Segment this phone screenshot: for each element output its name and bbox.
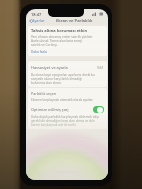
staticText: 18:47 bbox=[31, 12, 42, 17]
staticText: %61 bbox=[97, 65, 104, 70]
button[interactable]: Ayarlar bbox=[28, 17, 46, 24]
button[interactable]: Daha fazla bbox=[31, 50, 47, 54]
staticText: Bu ekran kayıt opsiyonları ayarlarını di… bbox=[31, 73, 95, 85]
other: Optimize edilmiş şarj açık bbox=[93, 106, 104, 113]
staticText: Tahsis altına koruması etkin bbox=[31, 28, 88, 33]
button[interactable]: Optimize edilmiş şarj bbox=[28, 106, 107, 113]
staticText: Ekran ve Parlaklık bbox=[56, 18, 93, 24]
staticText: Optimize edilmiş şarj bbox=[31, 107, 69, 112]
staticText: Yeni cihazın almamış ender satırlık yükl… bbox=[31, 35, 93, 47]
staticText: Hassasiyet ve ayarla bbox=[31, 65, 68, 70]
staticText: Ayarlar bbox=[32, 18, 45, 23]
staticText: Daha düşük parlaklık karşılaşmak dinleme… bbox=[31, 115, 99, 127]
button[interactable]: Hassasiyet ve ayarla bbox=[28, 61, 107, 70]
staticText: Ekranın karşılaşmak otomatik olarak ayar… bbox=[31, 98, 94, 102]
staticText: Parlaklık seçen bbox=[31, 91, 56, 96]
staticText: Daha fazla bbox=[31, 50, 47, 54]
